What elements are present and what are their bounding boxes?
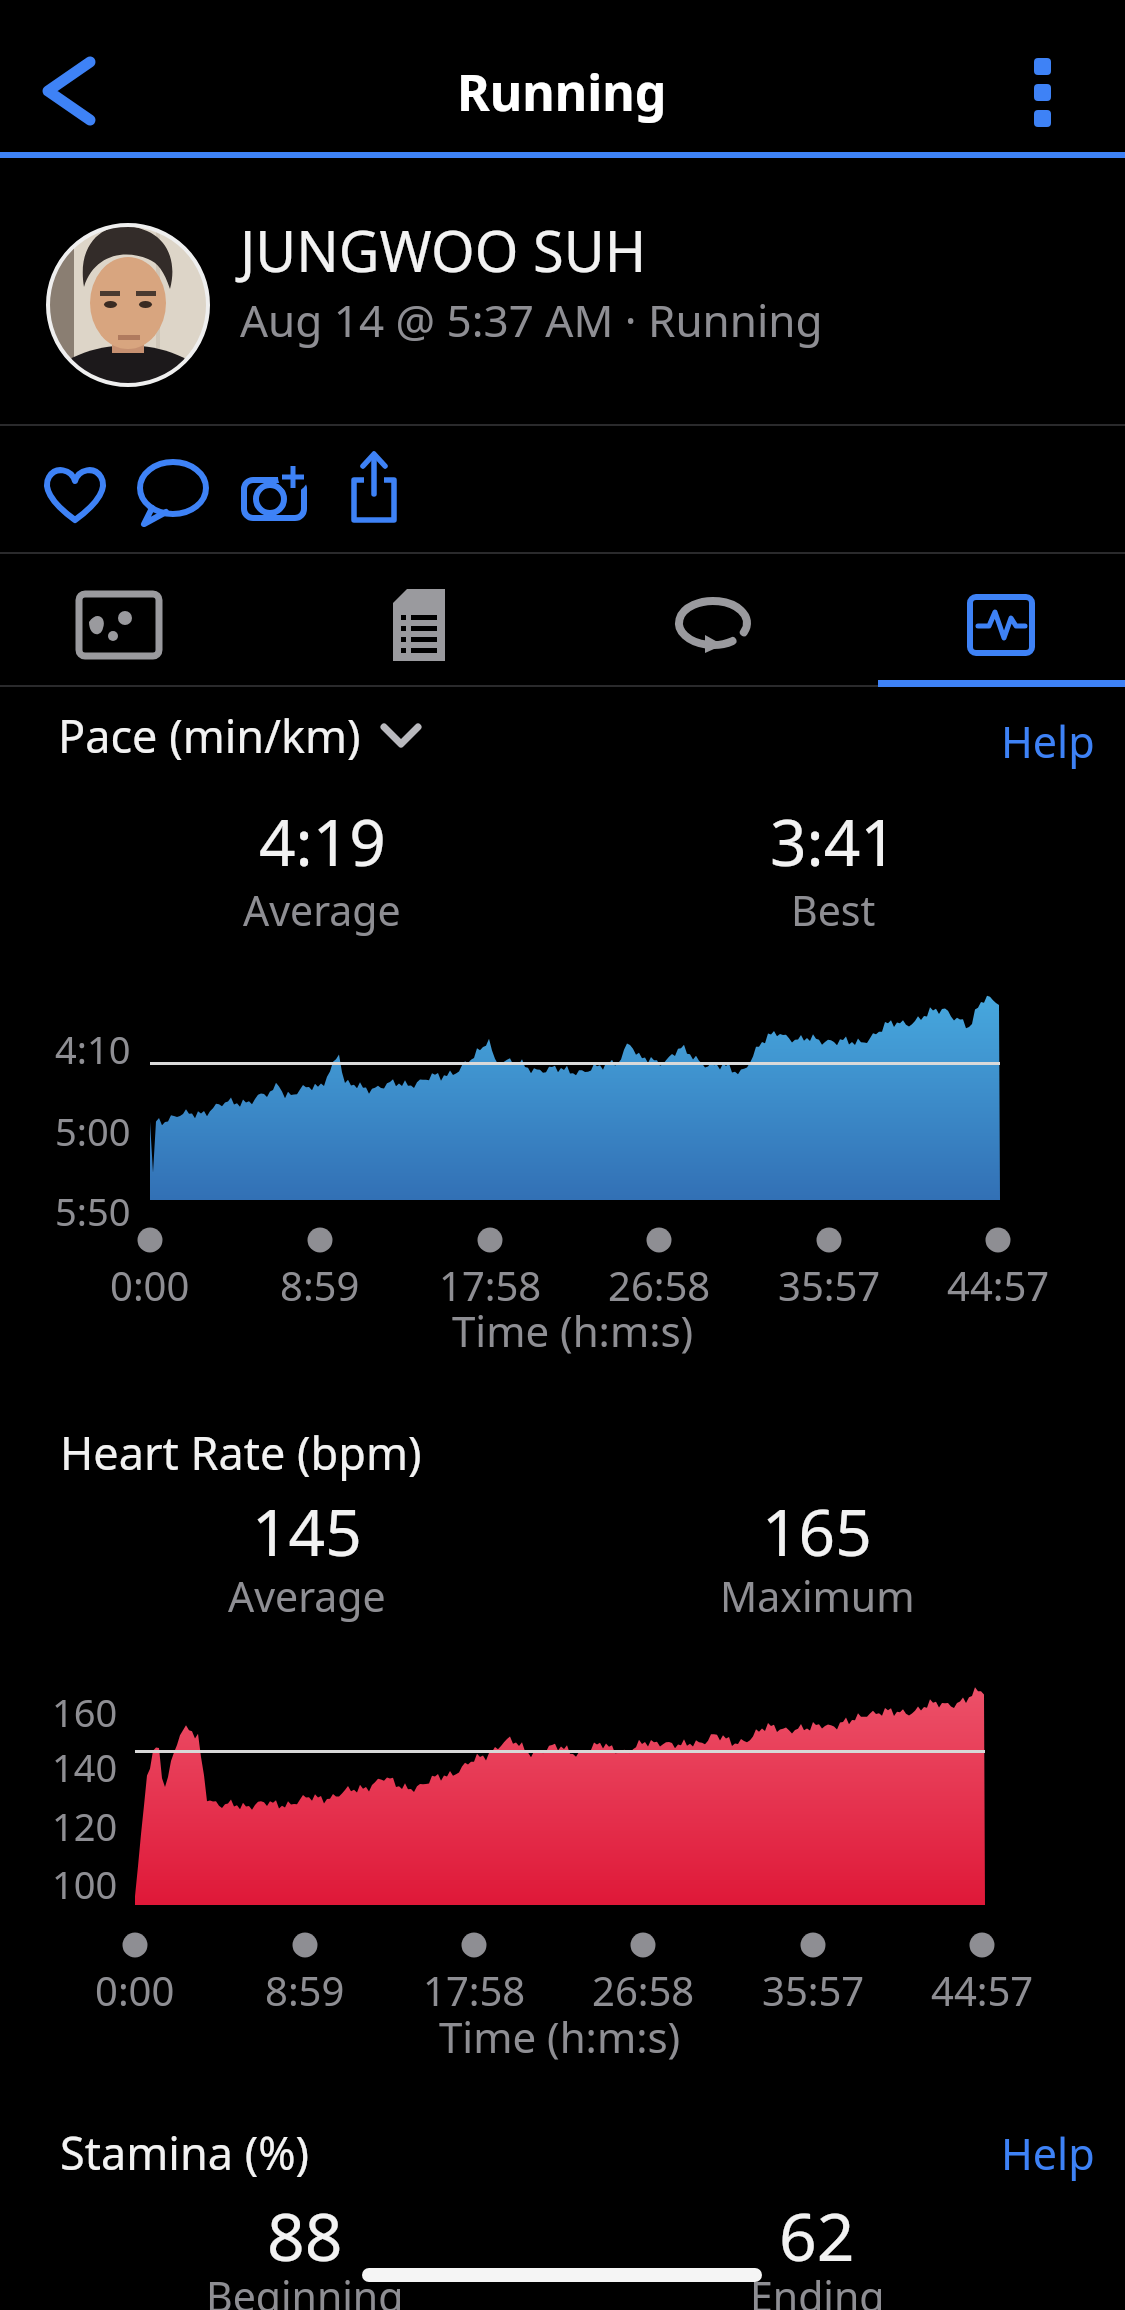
staticText: Ending [750,2268,885,2310]
staticText: 120 [52,1800,118,1852]
button[interactable]: Pace (min/km) [58,705,421,766]
button[interactable] [344,446,434,540]
button[interactable] [236,450,326,540]
staticText: Best [791,882,876,938]
button[interactable] [128,450,218,540]
staticText: 8:59 [280,1258,360,1312]
staticText: 100 [52,1858,118,1910]
staticText: Time (h:m:s) [452,1302,694,1359]
staticText: Pace (min/km) [58,705,361,766]
button[interactable] [30,450,120,540]
staticText: 26:58 [608,1258,711,1312]
button[interactable]: Help [975,2124,1095,2188]
staticText: 160 [52,1686,118,1738]
button[interactable] [28,40,118,140]
staticText: 62 [779,2190,855,2280]
staticText: Stamina (%) [60,2122,310,2183]
staticText: 4:19 [259,798,386,885]
staticText: 0:00 [110,1258,190,1312]
staticText: 88 [267,2190,343,2280]
staticText: 17:58 [423,1963,526,2017]
staticText: 44:57 [931,1963,1034,2017]
staticText: 0:00 [95,1963,175,2017]
staticText: 26:58 [592,1963,695,2017]
staticText: 35:57 [778,1258,881,1312]
staticText: Beginning [206,2268,404,2310]
staticText: 5:00 [55,1105,131,1157]
staticText: 4:10 [55,1023,131,1075]
staticText: 8:59 [265,1963,345,2017]
button[interactable] [282,554,563,680]
staticText: Maximum [720,1568,915,1624]
button[interactable] [563,554,844,680]
staticText: Average [228,1568,386,1624]
button[interactable] [0,554,282,680]
staticText: 3:41 [770,798,897,885]
button[interactable]: Help [975,712,1095,776]
staticText: 165 [762,1488,872,1575]
staticText: JUNGWOO SUH [240,212,647,288]
button[interactable] [1012,40,1082,150]
staticText: 17:58 [439,1258,542,1312]
staticText: 140 [52,1741,118,1793]
staticText: Running [457,58,667,126]
button[interactable] [844,554,1125,680]
staticText: Average [243,882,401,938]
staticText: Time (h:m:s) [439,2008,681,2065]
staticText: Heart Rate (bpm) [60,1422,422,1483]
staticText: 145 [252,1488,362,1575]
staticText: 35:57 [762,1963,865,2017]
staticText: 5:50 [55,1185,131,1237]
staticText: Help [1001,2124,1095,2183]
staticText: Help [1001,712,1095,771]
staticText: Aug 14 @ 5:37 AM · Running [240,290,823,350]
staticText: 44:57 [947,1258,1050,1312]
